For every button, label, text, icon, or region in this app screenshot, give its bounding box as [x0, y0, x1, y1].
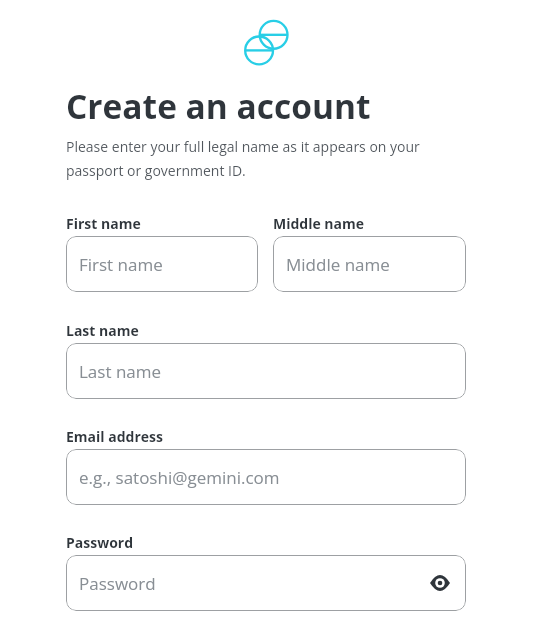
button[interactable]: e.g., satoshi@gemini.com [66, 449, 466, 505]
staticText: Middle name [286, 253, 390, 276]
button[interactable]: Password [66, 555, 466, 611]
staticText: Please enter your full legal name as it … [66, 137, 424, 180]
button[interactable]: Show password [427, 570, 453, 596]
staticText: Email address [66, 427, 163, 446]
staticText: Last name [79, 360, 162, 383]
staticText: Password [66, 533, 134, 552]
button[interactable]: Middle name [273, 236, 466, 292]
button[interactable]: Last name [66, 343, 466, 399]
staticText: e.g., satoshi@gemini.com [79, 466, 280, 489]
staticText: Create an account [66, 83, 371, 129]
staticText: First name [66, 214, 141, 233]
staticText: Last name [66, 321, 139, 340]
staticText: Middle name [273, 214, 365, 233]
staticText: First name [79, 253, 163, 276]
staticText: Password [79, 572, 156, 595]
button[interactable]: First name [66, 236, 258, 292]
